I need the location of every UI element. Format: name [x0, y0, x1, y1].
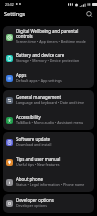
button[interactable]: Digital Wellbeing and parental controls: [3, 26, 94, 48]
button[interactable]: General management: [3, 90, 94, 110]
staticText: TalkBack • Mono audio • Assistant menu: [16, 120, 84, 125]
staticText: Tips and user manual: [16, 156, 61, 162]
staticText: Storage • Memory • Device protection: [16, 58, 80, 63]
staticText: Accessibility: [16, 114, 41, 120]
button[interactable]: Developer options: [3, 194, 94, 212]
staticText: Settings: [4, 10, 26, 18]
button[interactable]: Search: [85, 10, 94, 19]
staticText: About phone: [16, 176, 43, 182]
button[interactable]: Software update: [3, 132, 94, 152]
staticText: Download and install: [16, 142, 52, 147]
staticText: Apps: [16, 72, 27, 78]
staticText: Status • Legal information • Phone name: [16, 182, 85, 187]
staticText: Screen time • App timers • Bedtime mode: [16, 39, 86, 44]
staticText: Developer options: [16, 203, 47, 208]
staticText: Developer options: [16, 197, 54, 203]
staticText: Useful tips • New features: [16, 162, 60, 167]
staticText: Digital Wellbeing and parental controls: [16, 28, 79, 39]
button[interactable]: About phone: [3, 172, 94, 192]
button[interactable]: Accessibility: [3, 110, 94, 130]
staticText: Language and keyboard • Date and time: [16, 100, 84, 105]
staticText: Battery and device care: [16, 52, 65, 58]
button[interactable]: Battery and device care: [3, 48, 94, 68]
staticText: Default apps • App settings: [16, 78, 62, 83]
staticText: 23:32: [5, 2, 14, 7]
button[interactable]: Tips and user manual: [3, 152, 94, 172]
button[interactable]: Apps: [3, 68, 94, 88]
staticText: General management: [16, 94, 62, 100]
staticText: Software update: [16, 136, 51, 142]
